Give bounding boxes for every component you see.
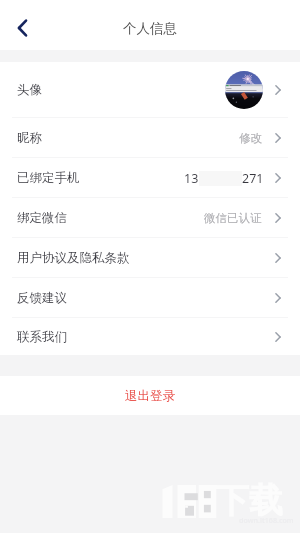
button[interactable]: 反馈建议 bbox=[0, 278, 300, 318]
staticText: 昵称 bbox=[17, 130, 42, 146]
staticText: 个人信息 bbox=[123, 20, 177, 37]
staticText: 联系我们 bbox=[17, 329, 67, 345]
staticText: 头像 bbox=[17, 82, 42, 98]
button[interactable]: Back bbox=[6, 12, 38, 44]
staticText: 13 bbox=[184, 170, 199, 187]
button[interactable]: 用户协议及隐私条款 bbox=[0, 238, 300, 278]
button[interactable]: 已绑定手机 bbox=[0, 158, 300, 198]
staticText: 271 bbox=[242, 170, 264, 187]
button[interactable]: 绑定微信 bbox=[0, 198, 300, 238]
button[interactable]: 昵称 bbox=[0, 118, 300, 158]
staticText: 用户协议及隐私条款 bbox=[17, 250, 130, 266]
staticText: 修改 bbox=[239, 131, 262, 145]
staticText: 反馈建议 bbox=[17, 290, 67, 306]
button[interactable]: 退出登录 bbox=[0, 376, 300, 415]
staticText: 绑定微信 bbox=[17, 210, 67, 226]
button[interactable]: 联系我们 bbox=[0, 318, 300, 355]
button[interactable]: 头像 bbox=[0, 62, 300, 118]
staticText: 已绑定手机 bbox=[17, 170, 80, 186]
staticText: 下载 bbox=[215, 479, 283, 522]
staticText: 微信已认证 bbox=[204, 211, 262, 225]
staticText: 退出登录 bbox=[125, 388, 175, 404]
